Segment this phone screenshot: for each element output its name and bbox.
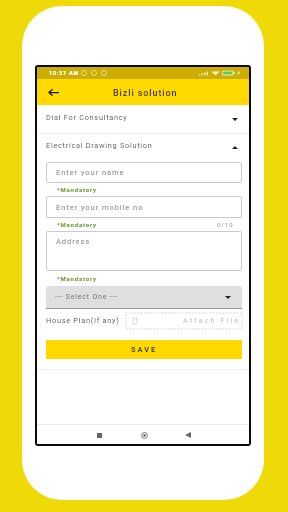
staticText: SAVE (131, 345, 158, 354)
staticText: Dial For Consultancy (46, 113, 128, 122)
button[interactable]: Dial For Consultancy (37, 105, 249, 133)
staticText: *Mandatory (57, 221, 97, 228)
staticText: *Mandatory (57, 186, 97, 193)
button[interactable]: Address (46, 231, 242, 271)
button[interactable]: --- Select One --- (46, 286, 242, 308)
staticText: Enter your mobile no (56, 203, 144, 212)
staticText: --- Select One --- (55, 293, 119, 301)
staticText: 10:37 AM (49, 70, 79, 76)
staticText: Bizli solution (113, 88, 178, 99)
staticText: Attach File (183, 317, 241, 325)
staticText: Enter your name (56, 168, 125, 177)
staticText: Electrical Drawing Solution (46, 141, 153, 150)
staticText: 0/10 (217, 221, 234, 228)
button[interactable]: Recent apps (92, 428, 106, 442)
button[interactable]: Home (137, 428, 151, 442)
button[interactable]: SAVE (46, 340, 242, 359)
staticText: *Mandatory (57, 275, 97, 282)
staticText: Address (56, 237, 91, 246)
staticText: House Plan(If any) (46, 316, 120, 325)
button[interactable]: Enter your name (46, 162, 242, 183)
button[interactable]: Back (181, 428, 195, 442)
button[interactable]: Electrical Drawing Solution (37, 134, 249, 161)
button[interactable]: Attach File (126, 313, 242, 329)
button[interactable]: Back (43, 82, 63, 102)
button[interactable]: Enter your mobile no (46, 196, 242, 218)
